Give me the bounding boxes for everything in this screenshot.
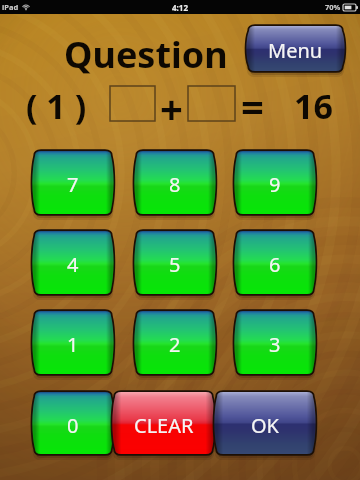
staticText: 70% bbox=[325, 2, 341, 12]
button[interactable]: Answer field bbox=[188, 86, 235, 121]
button[interactable]: 8 bbox=[137, 151, 213, 214]
staticText: CLEAR bbox=[134, 412, 194, 439]
button[interactable]: 4 bbox=[35, 231, 111, 294]
staticText: ( 1 ) bbox=[26, 83, 87, 129]
button[interactable]: Menu bbox=[249, 26, 342, 71]
button[interactable]: 2 bbox=[137, 311, 213, 374]
button[interactable]: 3 bbox=[237, 311, 313, 374]
staticText: Menu bbox=[268, 37, 323, 64]
button[interactable]: 7 bbox=[35, 151, 111, 214]
button[interactable]: CLEAR bbox=[115, 392, 212, 454]
button[interactable]: 0 bbox=[35, 392, 111, 454]
staticText: Question bbox=[64, 30, 228, 79]
staticText: 4 bbox=[67, 251, 79, 278]
staticText: 2 bbox=[169, 331, 181, 358]
button[interactable]: 6 bbox=[237, 231, 313, 294]
staticText: 6 bbox=[269, 251, 281, 278]
button[interactable]: OK bbox=[217, 392, 313, 454]
staticText: 8 bbox=[169, 171, 181, 198]
staticText: 0 bbox=[67, 412, 79, 439]
staticText: + bbox=[160, 81, 183, 135]
button[interactable]: 5 bbox=[137, 231, 213, 294]
button[interactable]: 1 bbox=[35, 311, 111, 374]
staticText: iPad bbox=[2, 2, 19, 12]
button[interactable]: 9 bbox=[237, 151, 313, 214]
staticText: 5 bbox=[169, 251, 181, 278]
staticText: 1 bbox=[67, 331, 79, 358]
staticText: OK bbox=[251, 412, 279, 439]
staticText: 4:12 bbox=[172, 2, 188, 13]
staticText: 16 bbox=[294, 83, 333, 129]
staticText: = bbox=[241, 79, 264, 133]
staticText: 9 bbox=[269, 171, 281, 198]
staticText: 3 bbox=[269, 331, 281, 358]
button[interactable]: Answer field bbox=[110, 86, 155, 121]
staticText: 7 bbox=[67, 171, 79, 198]
